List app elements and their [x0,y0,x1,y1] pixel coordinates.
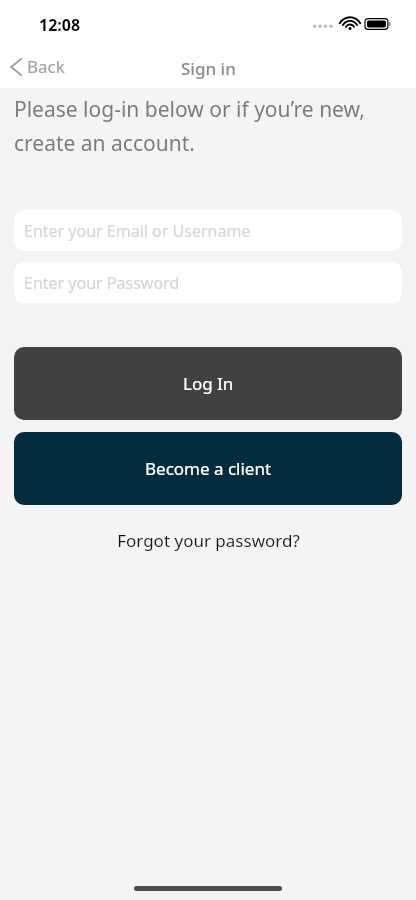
button[interactable]: Forgot your password? [14,525,402,556]
staticText: Become a client [145,457,272,480]
staticText: Sign in [181,57,236,80]
button[interactable]: Enter your Email or Username [14,210,402,251]
staticText: Forgot your password? [117,529,300,552]
staticText: Back [27,55,65,78]
button[interactable]: Log In [14,347,402,420]
button[interactable]: Become a client [14,432,402,505]
button[interactable]: Back [6,52,68,81]
button[interactable]: Enter your Password [14,262,402,303]
staticText: Enter your Password [24,272,180,294]
staticText: 12:08 [39,14,81,36]
staticText: Log In [183,372,234,395]
staticText: Enter your Email or Username [24,220,251,242]
staticText: Please log-in below or if you’re new, cr… [14,95,402,157]
